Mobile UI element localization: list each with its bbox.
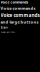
staticText: Voice commands xyxy=(0,12,39,18)
staticText: and large buttons xyxy=(0,19,38,25)
staticText: Voice commands xyxy=(0,5,35,11)
staticText: Alarm xyxy=(0,26,7,29)
staticText: Voice commands xyxy=(0,0,28,4)
staticText: Wake up time xyxy=(0,30,14,33)
